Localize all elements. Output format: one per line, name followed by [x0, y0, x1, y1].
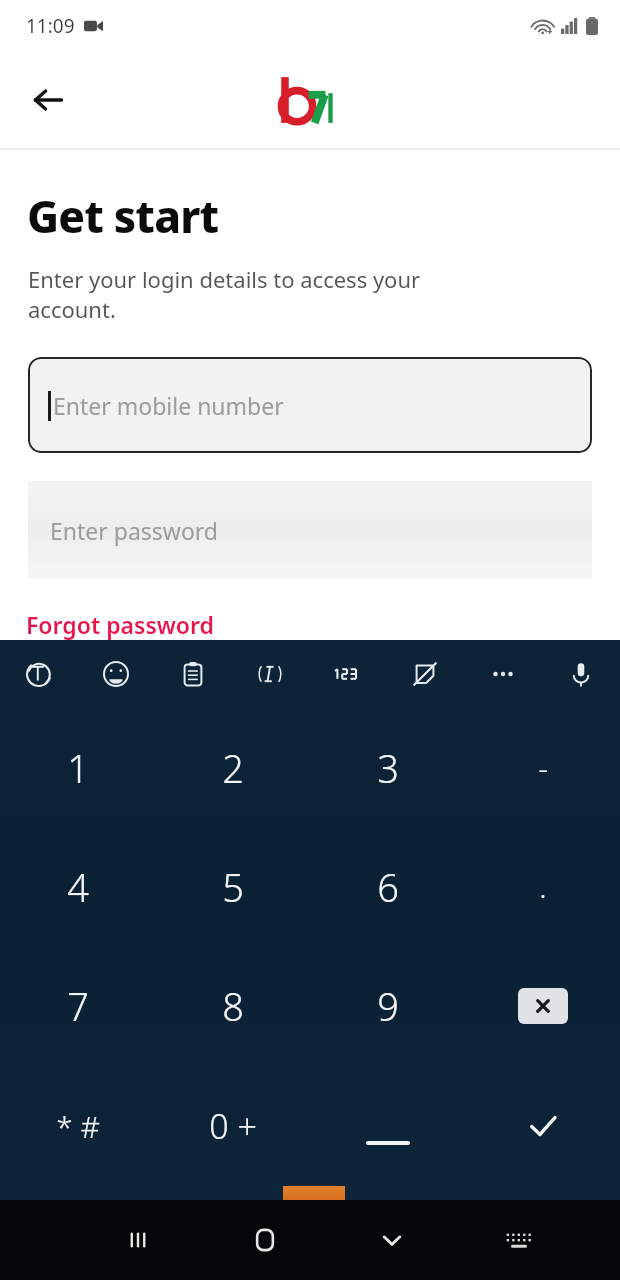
- button[interactable]: Enter password: [28, 481, 592, 579]
- staticText: Enter password: [50, 515, 219, 546]
- staticText: 2: [222, 742, 244, 794]
- staticText: Get start: [27, 186, 219, 246]
- staticText: .: [539, 866, 547, 907]
- staticText: Enter mobile number: [53, 390, 284, 421]
- button[interactable]: Home: [201, 1200, 328, 1280]
- button[interactable]: Translate: [0, 640, 77, 708]
- button[interactable]: Back: [16, 68, 80, 132]
- staticText: 11:09: [26, 13, 75, 39]
- button[interactable]: Emoji: [77, 640, 154, 708]
- button[interactable]: Enter mobile number: [28, 357, 592, 453]
- button[interactable]: Text editing: [231, 640, 308, 708]
- staticText: 9: [377, 980, 399, 1032]
- staticText: 3: [377, 742, 399, 794]
- button[interactable]: Recent apps: [75, 1200, 201, 1280]
- staticText: Enter your login details to access your …: [28, 264, 421, 325]
- staticText: 8: [222, 980, 244, 1032]
- button[interactable]: .: [465, 827, 620, 946]
- button[interactable]: 8: [155, 946, 310, 1066]
- button[interactable]: More options: [464, 640, 542, 708]
- button[interactable]: Space: [310, 1066, 465, 1186]
- staticText: 6: [377, 861, 399, 913]
- button[interactable]: 9: [310, 946, 465, 1066]
- staticText: * #: [56, 1106, 100, 1147]
- button[interactable]: 1: [0, 708, 155, 827]
- staticText: 4: [67, 861, 89, 913]
- button[interactable]: Clipboard: [154, 640, 231, 708]
- staticText: 0 +: [209, 1103, 257, 1149]
- button[interactable]: 4: [0, 827, 155, 946]
- button[interactable]: Stickers off: [386, 640, 464, 708]
- button[interactable]: Voice input: [542, 640, 620, 708]
- staticText: 1: [67, 742, 89, 794]
- button[interactable]: 0 +: [155, 1066, 310, 1186]
- staticText: Forgot password: [26, 609, 214, 640]
- button[interactable]: Hide keyboard: [328, 1200, 455, 1280]
- button[interactable]: Backspace: [465, 946, 620, 1066]
- button[interactable]: 7: [0, 946, 155, 1066]
- button[interactable]: Numbers: [308, 640, 386, 708]
- button[interactable]: Switch keyboard: [455, 1200, 582, 1280]
- button[interactable]: * #: [0, 1066, 155, 1186]
- button[interactable]: Done: [465, 1066, 620, 1186]
- staticText: 5: [222, 861, 244, 913]
- button[interactable]: 6: [310, 827, 465, 946]
- button[interactable]: Forgot password: [26, 609, 214, 640]
- staticText: -: [538, 747, 548, 788]
- button[interactable]: 5: [155, 827, 310, 946]
- button[interactable]: 3: [310, 708, 465, 827]
- button[interactable]: 2: [155, 708, 310, 827]
- staticText: 7: [67, 980, 89, 1032]
- button[interactable]: -: [465, 708, 620, 827]
